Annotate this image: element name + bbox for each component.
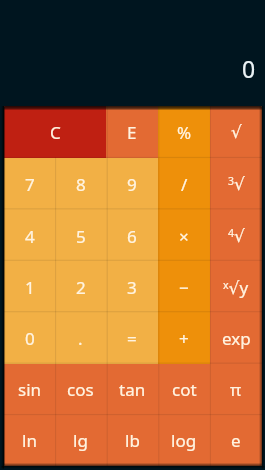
- staticText: ln: [22, 429, 37, 452]
- button[interactable]: 8: [55, 158, 106, 210]
- button[interactable]: lg: [55, 415, 106, 466]
- staticText: /: [181, 173, 188, 196]
- staticText: 2: [76, 276, 86, 299]
- staticText: cos: [67, 378, 94, 401]
- button[interactable]: Square root: [210, 106, 262, 158]
- button[interactable]: Cube root: [210, 158, 262, 210]
- staticText: 3√: [228, 174, 245, 194]
- button[interactable]: .: [55, 313, 106, 364]
- staticText: lb: [125, 429, 140, 452]
- button[interactable]: Multiply: [158, 210, 210, 262]
- staticText: 3: [127, 276, 137, 299]
- staticText: 8: [76, 173, 86, 196]
- staticText: 0: [25, 327, 35, 350]
- staticText: sin: [18, 378, 42, 401]
- button[interactable]: Fourth root: [210, 210, 262, 262]
- staticText: ×: [179, 225, 189, 248]
- button[interactable]: 0: [4, 313, 55, 364]
- button[interactable]: Divide: [158, 158, 210, 210]
- button[interactable]: cot: [158, 364, 210, 415]
- button[interactable]: 6: [106, 210, 158, 262]
- button[interactable]: =: [106, 313, 158, 364]
- button[interactable]: Minus: [158, 262, 210, 313]
- staticText: π: [230, 378, 242, 401]
- staticText: √: [231, 122, 242, 142]
- button[interactable]: lb: [106, 415, 158, 466]
- button[interactable]: E: [106, 106, 158, 158]
- staticText: 4: [25, 225, 35, 248]
- staticText: %: [177, 121, 192, 144]
- button[interactable]: log: [158, 415, 210, 466]
- staticText: 6: [127, 225, 137, 248]
- button[interactable]: Euler number: [210, 415, 262, 466]
- staticText: −: [179, 276, 189, 299]
- staticText: +: [179, 327, 189, 350]
- button[interactable]: sin: [4, 364, 55, 415]
- staticText: tan: [119, 378, 146, 401]
- button[interactable]: C: [4, 106, 106, 158]
- staticText: .: [78, 327, 83, 350]
- button[interactable]: Plus: [158, 313, 210, 364]
- staticText: cot: [172, 378, 197, 401]
- button[interactable]: 3: [106, 262, 158, 313]
- button[interactable]: 1: [4, 262, 55, 313]
- button[interactable]: 0: [0, 0, 256, 106]
- staticText: E: [127, 121, 137, 144]
- button[interactable]: Nth root: [210, 262, 262, 313]
- button[interactable]: 7: [4, 158, 55, 210]
- button[interactable]: 9: [106, 158, 158, 210]
- button[interactable]: 2: [55, 262, 106, 313]
- staticText: x√y: [223, 276, 249, 299]
- staticText: 1: [25, 276, 35, 299]
- staticText: log: [171, 429, 197, 452]
- staticText: =: [127, 327, 137, 350]
- button[interactable]: exp: [210, 313, 262, 364]
- staticText: 7: [25, 173, 35, 196]
- staticText: 5: [76, 225, 86, 248]
- button[interactable]: cos: [55, 364, 106, 415]
- staticText: e: [231, 429, 241, 452]
- staticText: lg: [73, 429, 88, 452]
- button[interactable]: 4: [4, 210, 55, 262]
- staticText: 9: [127, 173, 137, 196]
- staticText: 4√: [228, 226, 245, 246]
- staticText: C: [50, 121, 61, 144]
- button[interactable]: tan: [106, 364, 158, 415]
- staticText: exp: [222, 327, 251, 350]
- button[interactable]: Pi: [210, 364, 262, 415]
- button[interactable]: ln: [4, 415, 55, 466]
- button[interactable]: %: [158, 106, 210, 158]
- button[interactable]: 5: [55, 210, 106, 262]
- staticText: 0: [242, 53, 256, 84]
